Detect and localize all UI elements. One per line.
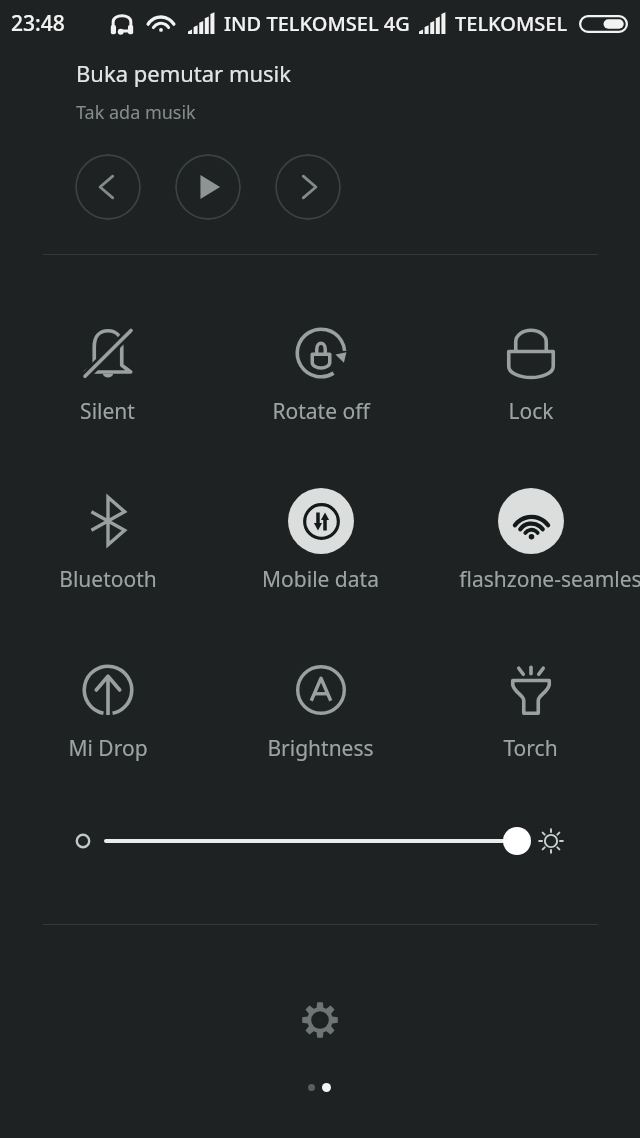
staticText: Lock xyxy=(508,397,554,426)
staticText: flashzone-seamless xyxy=(459,565,640,594)
button[interactable]: Settings xyxy=(284,984,356,1056)
button[interactable]: Rotate off xyxy=(215,320,426,427)
staticText: Torch xyxy=(503,734,558,763)
button[interactable]: flashzone-seamless xyxy=(425,488,636,595)
button[interactable]: Torch xyxy=(425,657,636,764)
button[interactable]: Mi Drop xyxy=(2,657,213,764)
staticText: Bluetooth xyxy=(59,565,157,594)
staticText: Buka pemutar musik xyxy=(76,58,292,88)
staticText: IND TELKOMSEL 4G xyxy=(224,10,410,37)
button[interactable]: Brightness xyxy=(215,657,426,764)
button[interactable]: Lock xyxy=(425,320,636,427)
staticText: Rotate off xyxy=(272,397,370,426)
staticText: Silent xyxy=(80,397,135,426)
button[interactable]: Play xyxy=(175,154,241,220)
staticText: Mobile data xyxy=(262,565,379,594)
button[interactable]: Next xyxy=(275,154,341,220)
staticText: TELKOMSEL xyxy=(455,10,568,37)
staticText: 23:48 xyxy=(11,9,65,38)
button[interactable]: Bluetooth xyxy=(2,488,213,595)
button[interactable]: Silent xyxy=(2,320,213,427)
staticText: Brightness xyxy=(267,734,374,763)
button[interactable]: Brightness slider xyxy=(95,818,535,864)
button[interactable]: Previous xyxy=(75,154,141,220)
staticText: Tak ada musik xyxy=(76,100,196,125)
button[interactable]: Mobile data xyxy=(215,488,426,595)
staticText: Mi Drop xyxy=(68,734,148,763)
